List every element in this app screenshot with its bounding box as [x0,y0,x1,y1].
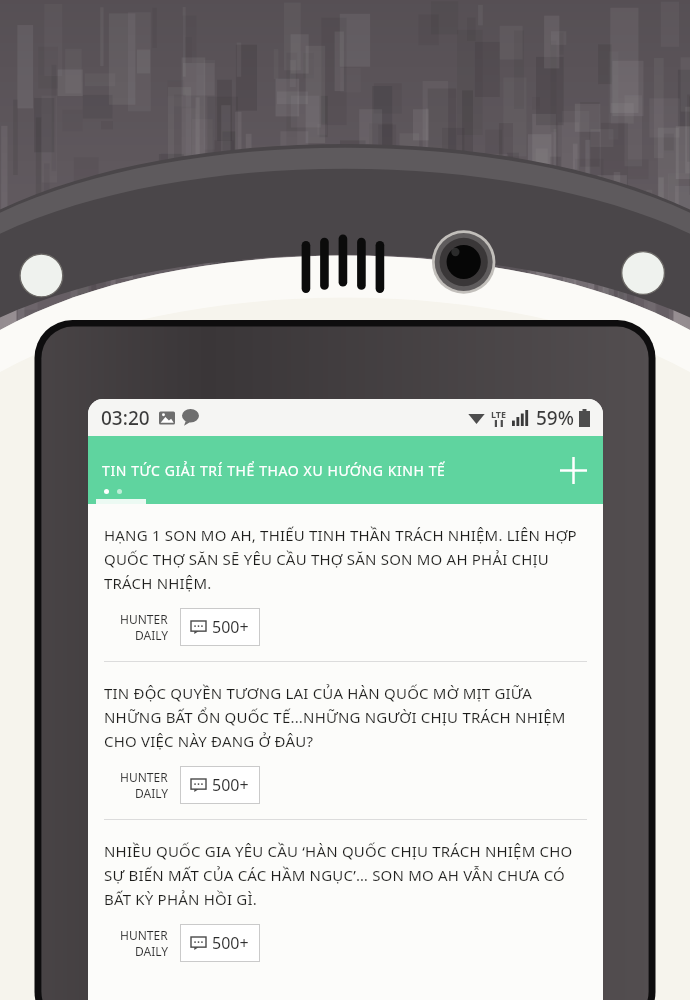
button[interactable]: Add [555,452,591,488]
staticText: NHIỀU QUỐC GIA YÊU CẦU ‘HÀN QUỐC CHỊU TR… [104,841,587,909]
button[interactable]: 500+ [180,608,260,646]
staticText: 500+ [212,774,249,796]
button[interactable]: 500+ [180,766,260,804]
staticText: 500+ [212,932,249,954]
button[interactable]: TIN ĐỘC QUYỀN TƯƠNG LAI CỦA HÀN QUỐC MỜ … [88,662,603,820]
staticText: TIN TỨC GIẢI TRÍ THỂ THAO XU HƯỚNG KINH … [102,461,446,480]
staticText: DAILY [135,943,168,959]
staticText: HUNTER [120,769,168,785]
staticText: 500+ [212,616,249,638]
staticText: HUNTER [120,927,168,943]
staticText: DAILY [135,785,168,801]
staticText: TIN ĐỘC QUYỀN TƯƠNG LAI CỦA HÀN QUỐC MỜ … [104,683,587,751]
staticText: HUNTER [120,611,168,627]
staticText: HẠNG 1 SON MO AH, THIẾU TINH THẦN TRÁCH … [104,525,587,593]
button[interactable]: HẠNG 1 SON MO AH, THIẾU TINH THẦN TRÁCH … [88,504,603,662]
staticText: LTE [491,408,507,420]
staticText: DAILY [135,627,168,643]
staticText: 03:20 [101,405,150,431]
staticText: 59% [536,405,574,431]
button[interactable]: 500+ [180,924,260,962]
button[interactable]: NHIỀU QUỐC GIA YÊU CẦU ‘HÀN QUỐC CHỊU TR… [88,820,603,977]
